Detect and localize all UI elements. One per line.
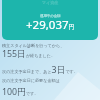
staticText: +29,037円 <box>26 17 75 33</box>
staticText: 100円です。 <box>2 86 39 98</box>
staticText: 運用中の金額 <box>40 14 61 18</box>
staticText: 積立スタイル診断を行ってから、 <box>2 43 65 48</box>
staticText: 155日が経ちました。 <box>2 48 56 60</box>
staticText: 次の注文予定日まで、あと3日です。 <box>2 64 78 76</box>
staticText: 次の注文予定日に必要な金額は <box>2 78 60 83</box>
button[interactable]: マイ資産 <box>2 0 98 40</box>
staticText: マイ資産 <box>42 0 59 5</box>
